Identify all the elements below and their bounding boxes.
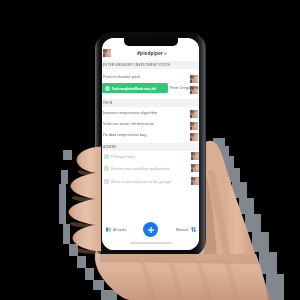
button[interactable]: #piedpiper <box>137 50 167 56</box>
staticText: Improve compression algorithm <box>103 110 158 115</box>
staticText: Manual <box>176 227 189 232</box>
staticText: #piedpiper <box>137 50 163 56</box>
button[interactable]: Manual <box>176 226 196 233</box>
staticText: Fill legal entry <box>111 154 135 159</box>
staticText: Task completed (feels nice, eh) <box>112 87 157 91</box>
staticText: TECH <box>103 100 113 105</box>
staticText: Peter Gregory Inv <box>170 85 199 90</box>
button[interactable]: Practice elevator pitch <box>102 71 199 82</box>
button[interactable]: All tasks <box>106 226 127 233</box>
button[interactable]: Task completed (feels nice, eh) <box>102 83 168 93</box>
button[interactable]: Move a new entry out of the garage <box>102 175 199 187</box>
button[interactable]: Add task <box>143 222 158 237</box>
staticText: PETER GREGORY INVESTMENT PITCH <box>103 62 171 67</box>
button[interactable]: Profile <box>103 49 111 57</box>
button[interactable]: Improve compression algorithm <box>102 107 199 118</box>
staticText: ADMIN <box>103 144 117 149</box>
button[interactable]: Fix data compression bug <box>102 129 199 140</box>
staticText: Move a new entry out of the garage <box>111 179 172 184</box>
button[interactable]: Fill legal entry <box>102 150 199 162</box>
button[interactable]: Review new candidate applications <box>102 162 199 174</box>
staticText: Scale our server infrastructure <box>103 121 155 126</box>
staticText: Review new candidate applications <box>111 166 170 171</box>
staticText: All tasks <box>113 227 127 232</box>
button[interactable]: Scale our server infrastructure <box>102 118 199 129</box>
staticText: Practice elevator pitch <box>103 74 141 79</box>
staticText: Fix data compression bug <box>103 132 147 137</box>
